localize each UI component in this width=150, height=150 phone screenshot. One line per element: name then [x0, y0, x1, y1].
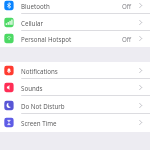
staticText: Sounds: [21, 84, 43, 92]
button[interactable]: Personal Hotspot: [0, 30, 150, 47]
staticText: Personal Hotspot: [21, 35, 72, 43]
button[interactable]: Bluetooth: [0, 0, 150, 14]
button[interactable]: Do Not Disturb: [0, 97, 150, 114]
staticText: Off: [122, 35, 132, 43]
staticText: Cellular: [21, 19, 44, 27]
staticText: Off: [122, 2, 132, 10]
button[interactable]: Screen Time: [0, 114, 150, 131]
button[interactable]: Sounds: [0, 79, 150, 96]
staticText: Screen Time: [21, 119, 57, 127]
button[interactable]: Notifications: [0, 62, 150, 79]
staticText: Bluetooth: [21, 2, 50, 10]
button[interactable]: Cellular: [0, 14, 150, 31]
staticText: Notifications: [21, 67, 58, 75]
staticText: Do Not Disturb: [21, 102, 65, 110]
